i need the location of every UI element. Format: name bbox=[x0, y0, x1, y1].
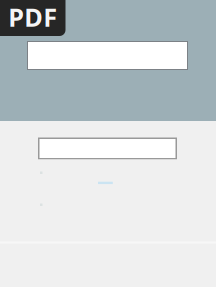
button[interactable]: Text field bbox=[38, 137, 177, 159]
staticText: PDF bbox=[8, 0, 57, 34]
button[interactable]: PDF bbox=[0, 0, 65, 36]
button[interactable]: Title field bbox=[27, 41, 188, 70]
